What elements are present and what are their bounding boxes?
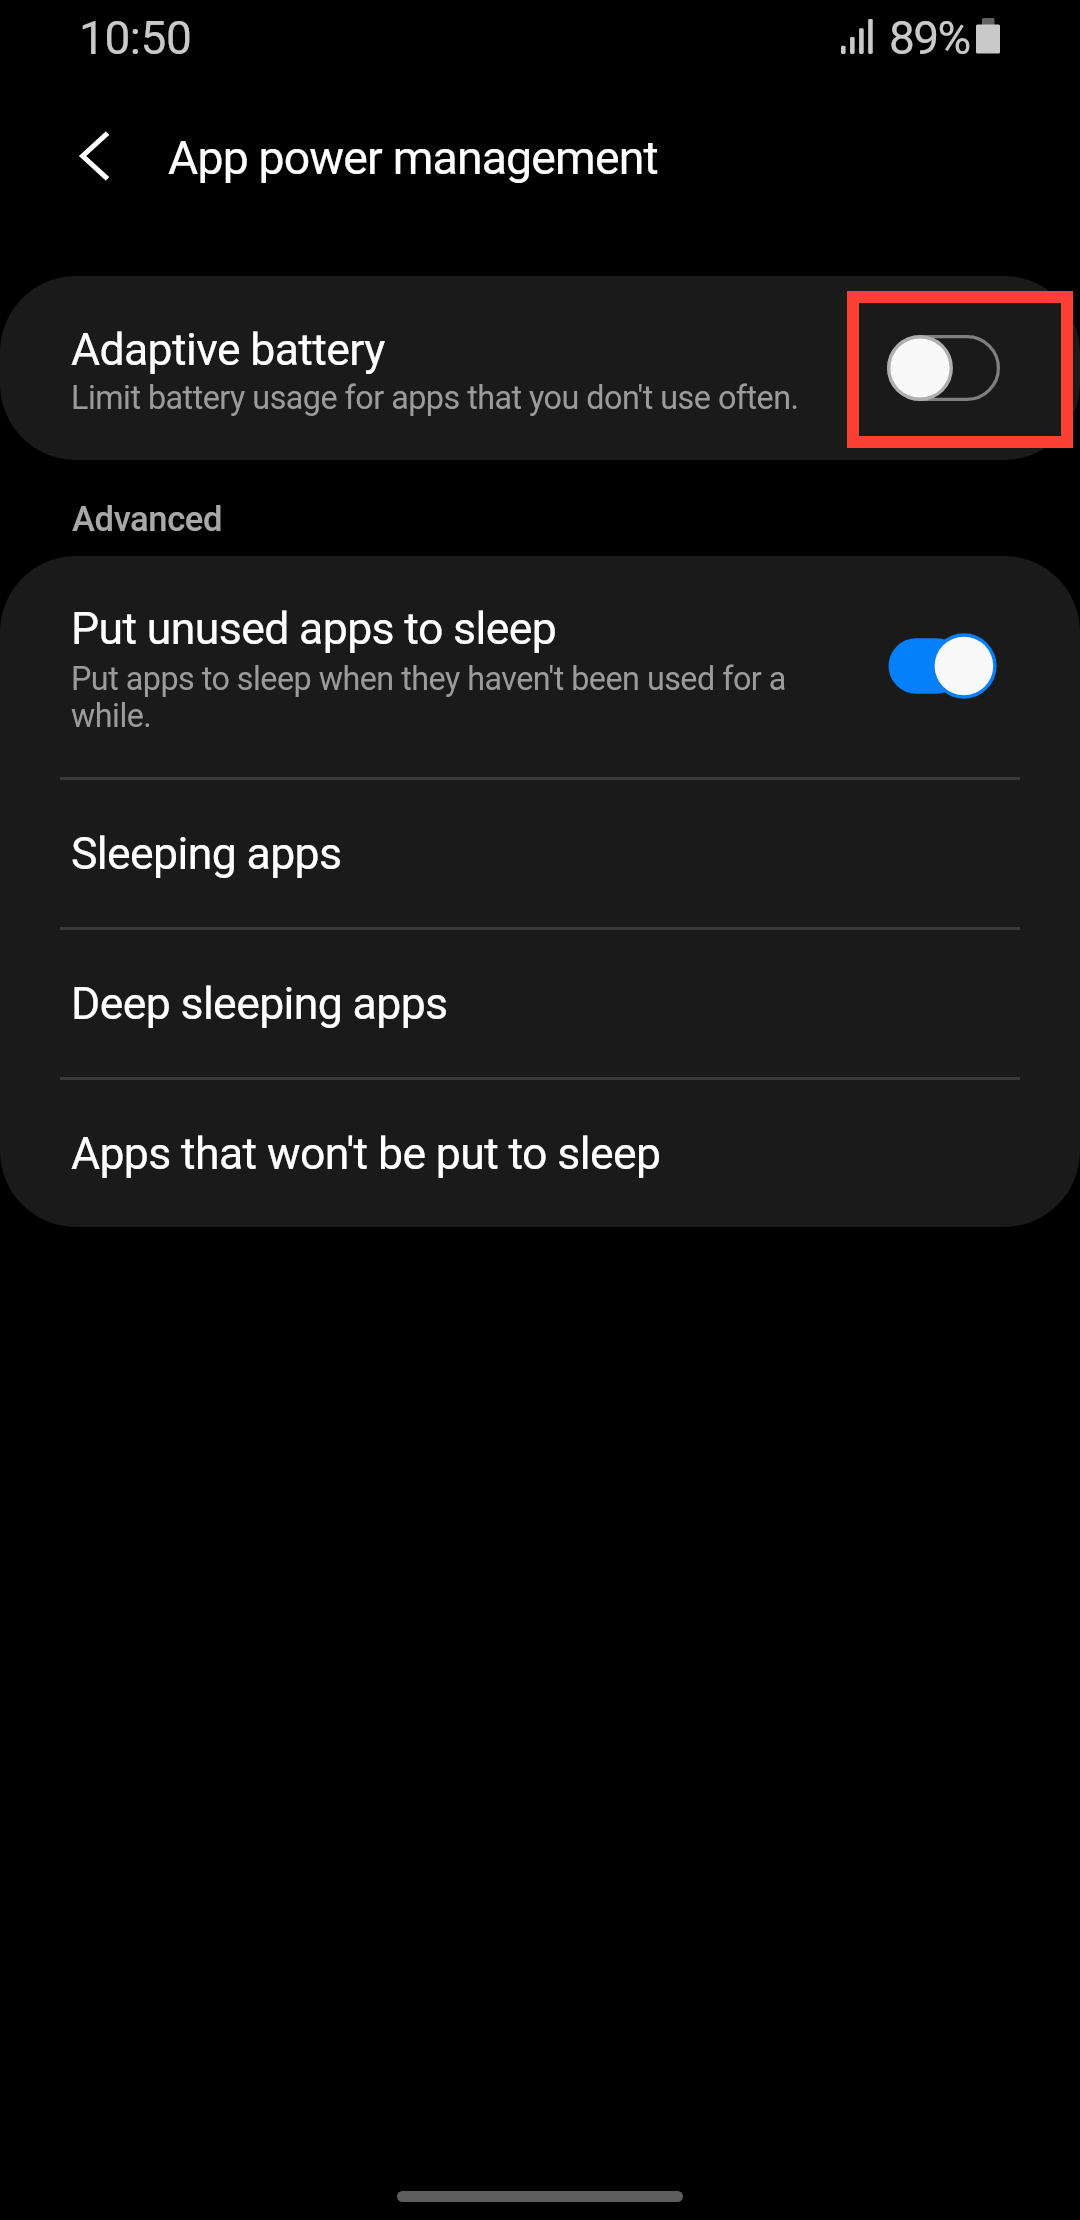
staticText: Limit battery usage for apps that you do… (71, 379, 799, 417)
staticText: Apps that won't be put to sleep (71, 1128, 661, 1180)
button[interactable]: Navigate up (64, 124, 128, 188)
button[interactable]: Adaptive battery (0, 276, 1080, 460)
button[interactable]: Sleeping apps (0, 780, 1080, 927)
button[interactable]: Apps that won't be put to sleep (0, 1080, 1080, 1227)
staticText: 10:50 (79, 11, 192, 65)
staticText: Put apps to sleep when they haven't been… (71, 660, 793, 735)
button[interactable]: Put unused apps to sleep switch, on (886, 633, 996, 699)
other: Mobile signal strength (841, 19, 873, 54)
staticText: Sleeping apps (71, 828, 342, 880)
button[interactable]: Adaptive battery switch, off (887, 335, 1000, 401)
button[interactable]: Put unused apps to sleep (0, 556, 1080, 777)
staticText: Advanced (72, 499, 223, 539)
staticText: Put unused apps to sleep (71, 603, 557, 655)
staticText: Adaptive battery (71, 324, 385, 376)
staticText: App power management (168, 131, 658, 185)
staticText: Deep sleeping apps (71, 978, 448, 1030)
button[interactable]: Deep sleeping apps (0, 930, 1080, 1077)
staticText: 89% (889, 11, 970, 65)
other: Battery 89 percent (976, 18, 1002, 54)
